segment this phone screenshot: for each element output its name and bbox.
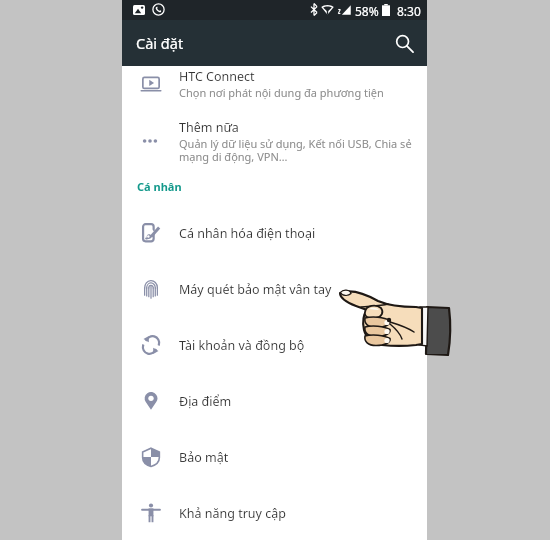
staticText: Chọn nơi phát nội dung đa phương tiện bbox=[179, 85, 384, 100]
button[interactable]: Địa điểm bbox=[122, 373, 427, 429]
staticText: Cá nhân bbox=[137, 179, 182, 194]
button[interactable]: Tài khoản và đồng bộ bbox=[122, 317, 427, 373]
staticText: Máy quét bảo mật vân tay bbox=[179, 281, 332, 298]
staticText: Quản lý dữ liệu sử dụng, Kết nối USB, Ch… bbox=[179, 136, 415, 165]
button[interactable]: Cá nhân hóa điện thoại bbox=[122, 205, 427, 261]
staticText: Khả năng truy cập bbox=[179, 505, 286, 522]
button[interactable]: HTC Connect bbox=[122, 66, 427, 116]
staticText: Cá nhân hóa điện thoại bbox=[179, 225, 316, 242]
button[interactable]: Search bbox=[390, 29, 418, 57]
staticText: 8:30 bbox=[397, 3, 421, 19]
button[interactable]: Thêm nữa bbox=[122, 117, 427, 179]
button[interactable]: Máy quét bảo mật vân tay bbox=[122, 261, 427, 317]
button[interactable]: Bảo mật bbox=[122, 429, 427, 485]
staticText: Bảo mật bbox=[179, 449, 229, 466]
staticText: 58% bbox=[355, 3, 379, 19]
staticText: HTC Connect bbox=[179, 68, 255, 85]
staticText: Thêm nữa bbox=[179, 119, 239, 136]
button[interactable]: Khả năng truy cập bbox=[122, 485, 427, 540]
staticText: Tài khoản và đồng bộ bbox=[179, 337, 305, 354]
staticText: Địa điểm bbox=[179, 393, 232, 410]
staticText: Cài đặt bbox=[136, 33, 184, 53]
